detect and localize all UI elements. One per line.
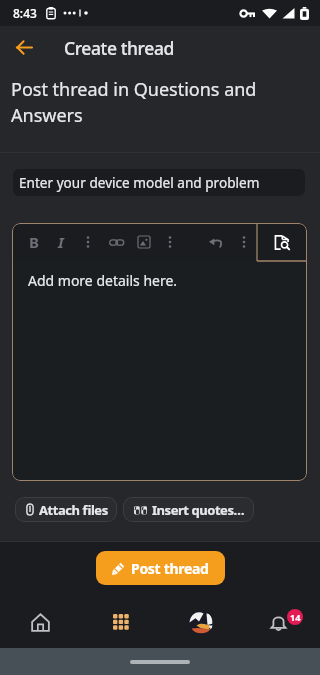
button[interactable]: More options — [230, 223, 257, 261]
button[interactable]: Forums — [80, 596, 160, 648]
staticText: Enter your device model and problem — [19, 173, 260, 192]
staticText: 14 — [290, 611, 301, 623]
button[interactable]: Insert image — [130, 223, 157, 261]
button[interactable]: More insert options — [157, 223, 183, 261]
button[interactable]: Bold — [20, 223, 47, 261]
staticText: Insert quotes… — [152, 501, 245, 519]
button[interactable]: Post thread — [96, 551, 225, 585]
button[interactable]: Preview — [257, 223, 307, 261]
button[interactable]: Attach files — [15, 497, 117, 522]
staticText: Add more details here. — [28, 271, 178, 290]
staticText: Post thread — [131, 559, 209, 578]
button[interactable]: Undo — [202, 223, 230, 261]
button[interactable]: Enter your device model and problem — [13, 169, 305, 196]
button[interactable]: Notifications — [240, 596, 320, 648]
button[interactable]: More text options — [74, 223, 102, 261]
button[interactable]: Insert quotes… — [123, 497, 254, 522]
staticText: I — [58, 232, 64, 252]
button[interactable]: Profile — [160, 596, 240, 648]
staticText: 8:43 — [13, 5, 37, 21]
button[interactable]: Back — [10, 33, 38, 61]
staticText: Attach files — [39, 501, 108, 519]
button[interactable]: Insert link — [102, 223, 130, 261]
staticText: B — [29, 232, 39, 252]
staticText: Create thread — [64, 36, 174, 60]
button[interactable]: Home — [0, 596, 80, 648]
button[interactable]: Italic — [47, 223, 74, 261]
staticText: Post thread in Questions and Answers — [11, 77, 298, 128]
